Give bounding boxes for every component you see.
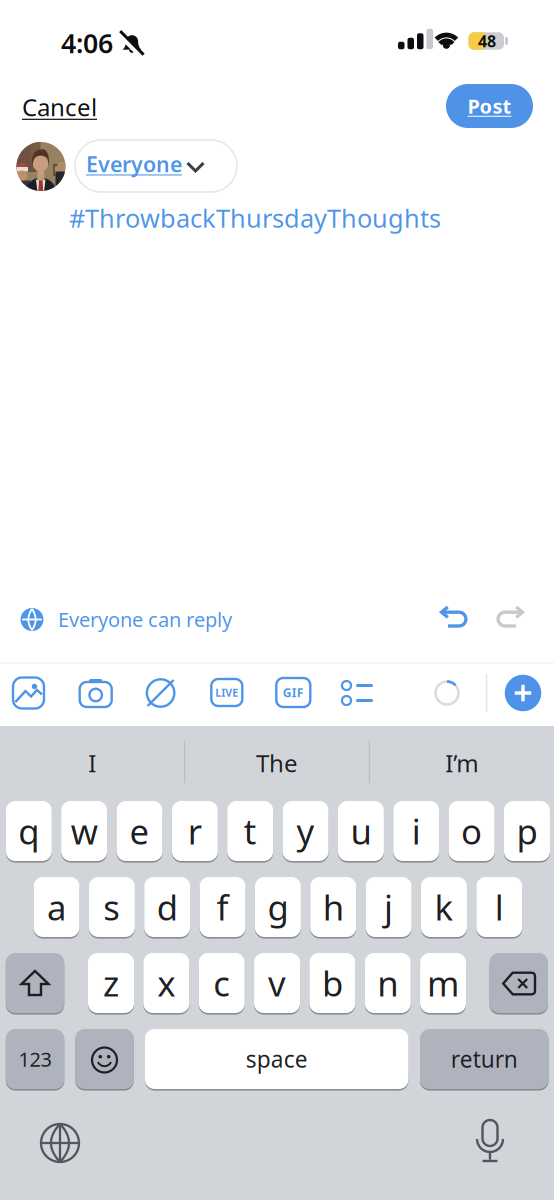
staticText: o	[461, 808, 482, 854]
button[interactable]: i	[393, 801, 439, 863]
button[interactable]: Redo	[495, 607, 525, 631]
staticText: f	[217, 884, 229, 930]
button[interactable]: Emoji	[75, 1029, 134, 1091]
button[interactable]: j	[366, 877, 412, 939]
button[interactable]: v	[254, 953, 300, 1015]
staticText: x	[157, 960, 175, 1006]
button[interactable]: a	[33, 877, 79, 939]
button[interactable]: n	[365, 953, 411, 1015]
button[interactable]: I’m	[372, 735, 552, 791]
button[interactable]: r	[172, 801, 218, 863]
staticText: #ThrowbackThursdayThoughts	[69, 201, 441, 235]
staticText: j	[384, 884, 393, 930]
staticText: i	[412, 808, 421, 854]
button[interactable]: Add new post to thread	[505, 675, 541, 711]
staticText: s	[103, 884, 120, 930]
button[interactable]: m	[420, 953, 466, 1015]
button[interactable]: Add poll	[341, 681, 373, 705]
staticText: r	[188, 808, 202, 854]
button[interactable]: o	[449, 801, 495, 863]
button[interactable]: The	[187, 735, 367, 791]
button[interactable]: s	[89, 877, 135, 939]
staticText: The	[256, 747, 298, 779]
button[interactable]: x	[143, 953, 189, 1015]
button[interactable]: t	[227, 801, 273, 863]
staticText: b	[322, 960, 343, 1006]
button[interactable]: Add a GIF	[276, 678, 310, 707]
button[interactable]: Everyone	[75, 140, 237, 192]
staticText: 4:06	[61, 25, 113, 61]
button[interactable]: y	[283, 801, 329, 863]
staticText: n	[377, 960, 398, 1006]
staticText: u	[350, 808, 371, 854]
staticText: Everyone can reply	[58, 606, 232, 633]
button[interactable]: Add photos or video	[13, 677, 44, 708]
staticText: I	[88, 747, 96, 779]
staticText: c	[213, 960, 230, 1006]
button[interactable]: k	[421, 877, 467, 939]
staticText: 123	[18, 1046, 51, 1072]
button[interactable]: g	[255, 877, 301, 939]
button[interactable]: Spaces	[145, 677, 177, 709]
staticText: p	[516, 808, 537, 854]
button[interactable]: c	[199, 953, 245, 1015]
staticText: t	[244, 808, 257, 854]
button[interactable]: u	[338, 801, 384, 863]
staticText: q	[18, 808, 39, 854]
button[interactable]: I	[2, 735, 182, 791]
staticText: a	[47, 884, 66, 930]
button[interactable]: f	[200, 877, 246, 939]
button[interactable]: Cancel	[22, 91, 97, 123]
button[interactable]: Go Live	[211, 679, 242, 706]
staticText: m	[427, 960, 459, 1006]
staticText: Everyone	[86, 150, 182, 178]
staticText: e	[129, 808, 149, 854]
button[interactable]: z	[88, 953, 134, 1015]
button[interactable]: Numbers	[6, 1029, 64, 1091]
button[interactable]: space	[145, 1029, 408, 1091]
button[interactable]: p	[504, 801, 550, 863]
staticText: z	[103, 960, 119, 1006]
staticText: v	[268, 960, 286, 1006]
button[interactable]: d	[144, 877, 190, 939]
staticText: GIF	[283, 684, 304, 700]
button[interactable]: Next keyboard	[40, 1123, 80, 1163]
button[interactable]: Post	[446, 84, 533, 128]
button[interactable]: w	[61, 801, 107, 863]
button[interactable]: return	[420, 1029, 548, 1091]
staticText: h	[323, 884, 344, 930]
button[interactable]: Shift	[6, 953, 64, 1015]
staticText: Cancel	[22, 91, 97, 123]
button[interactable]: b	[309, 953, 355, 1015]
staticText: Post	[467, 93, 511, 119]
button[interactable]: e	[116, 801, 162, 863]
staticText: LIVE	[215, 685, 238, 700]
button[interactable]: q	[6, 801, 52, 863]
button[interactable]: h	[310, 877, 356, 939]
button[interactable]: Delete	[489, 953, 548, 1015]
staticText: space	[246, 1044, 308, 1074]
button[interactable]: Dictate	[475, 1119, 505, 1163]
staticText: return	[451, 1044, 518, 1074]
button[interactable]: Camera	[79, 679, 113, 707]
button[interactable]: l	[476, 877, 522, 939]
staticText: 48	[478, 30, 496, 52]
button[interactable]: Undo	[438, 607, 468, 631]
staticText: k	[434, 884, 453, 930]
staticText: I’m	[445, 747, 478, 779]
staticText: l	[495, 884, 504, 930]
staticText: y	[297, 808, 315, 854]
staticText: d	[157, 884, 178, 930]
staticText: w	[71, 808, 98, 854]
staticText: g	[267, 884, 288, 930]
